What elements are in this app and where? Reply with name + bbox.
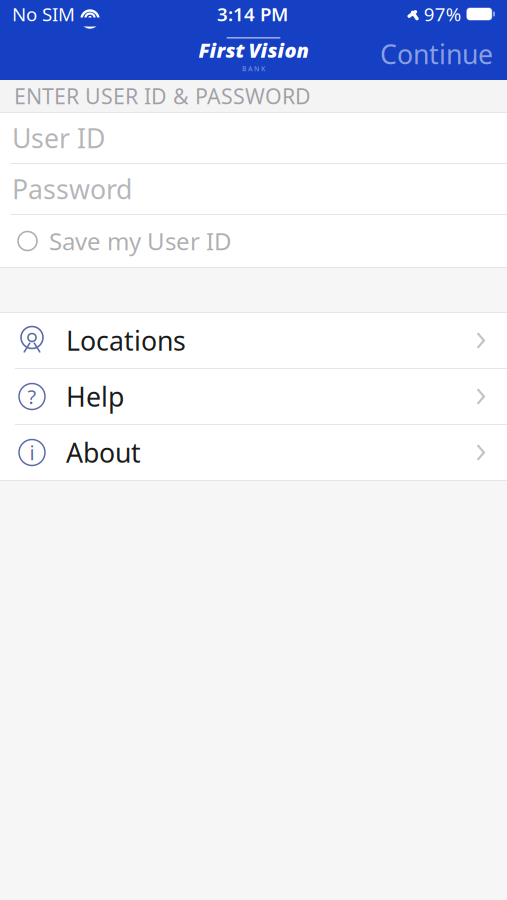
- button[interactable]: Locations: [0, 313, 507, 369]
- staticText: Locations: [66, 323, 186, 358]
- staticText: Vision: [248, 37, 308, 63]
- staticText: Continue: [380, 36, 493, 72]
- button[interactable]: Save my User ID: [0, 215, 507, 267]
- staticText: About: [66, 435, 141, 470]
- staticText: 3:14 PM: [217, 2, 288, 26]
- staticText: ?: [27, 383, 36, 410]
- staticText: Help: [66, 379, 124, 414]
- staticText: 97%: [424, 2, 462, 26]
- staticText: Password: [12, 171, 132, 207]
- staticText: No SIM: [12, 2, 75, 26]
- staticText: First: [198, 37, 244, 63]
- staticText: ENTER USER ID & PASSWORD: [14, 82, 311, 110]
- button[interactable]: ?: [0, 369, 507, 425]
- button[interactable]: Continue: [366, 28, 507, 80]
- staticText: User ID: [12, 120, 105, 156]
- staticText: i: [29, 439, 34, 466]
- staticText: B A N K: [242, 64, 265, 73]
- button[interactable]: i: [0, 425, 507, 480]
- staticText: Save my User ID: [49, 225, 232, 257]
